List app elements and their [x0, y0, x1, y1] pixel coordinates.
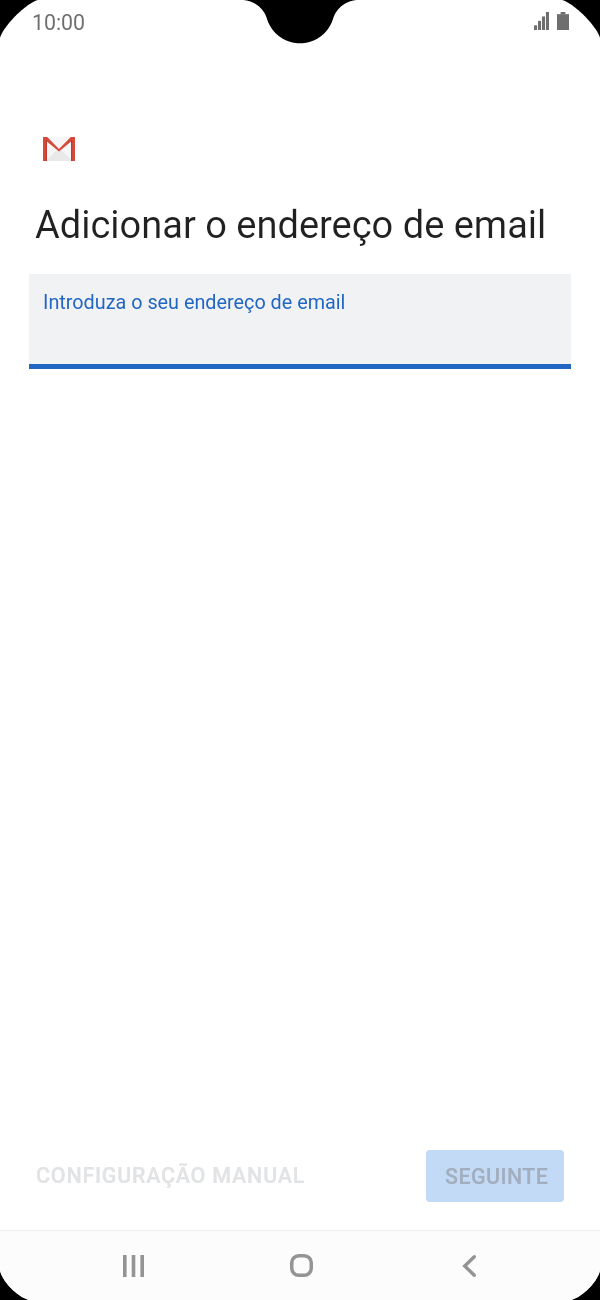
staticText: 10:00 — [32, 10, 86, 35]
staticText: SEGUINTE — [445, 1164, 549, 1189]
button[interactable]: Recent apps — [0, 1231, 267, 1300]
button[interactable]: CONFIGURAÇÃO MANUAL — [18, 1147, 324, 1204]
staticText: CONFIGURAÇÃO MANUAL — [36, 1163, 306, 1188]
button[interactable]: SEGUINTE — [426, 1150, 564, 1202]
staticText: Adicionar o endereço de email — [35, 203, 547, 248]
button[interactable]: Introduza o seu endereço de email — [29, 274, 571, 369]
staticText: Introduza o seu endereço de email — [43, 291, 346, 314]
button[interactable]: Home — [267, 1231, 335, 1300]
button[interactable]: Back — [335, 1231, 600, 1300]
